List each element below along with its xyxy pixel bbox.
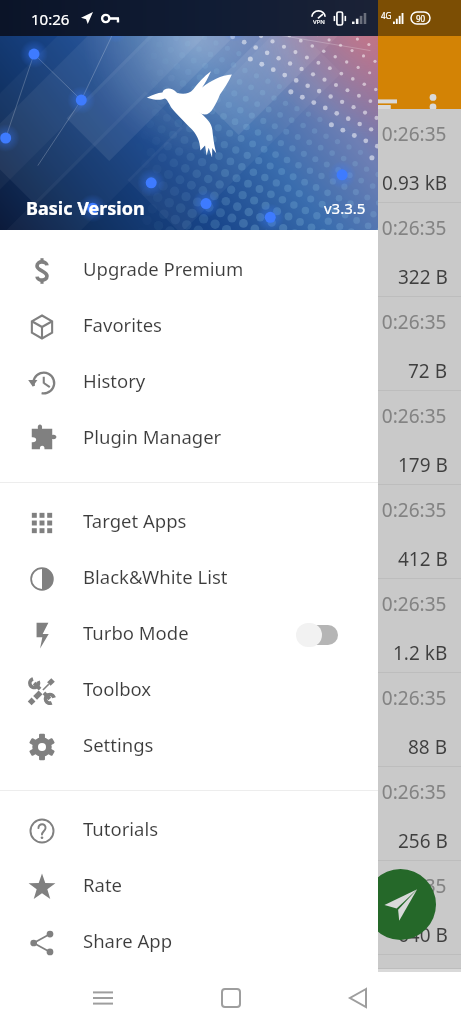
button[interactable]: Upgrade Premium [0,243,378,299]
button[interactable]: Black&White List [0,551,378,607]
staticText: 10:26 [31,9,70,29]
staticText: 90 [416,13,426,24]
button[interactable]: Tutorials [0,803,378,859]
button[interactable]: 10:26:35 [0,673,461,767]
button[interactable]: Favorites [0,299,378,355]
button[interactable]: 10:26:35 [0,579,461,673]
staticText: Plugin Manager [83,424,222,449]
button[interactable]: Back [334,974,382,1022]
button[interactable]: Plugin Manager [0,411,378,467]
staticText: 10:26:35 [371,215,447,241]
staticText: 10:26:35 [371,497,447,523]
button[interactable]: Send [365,869,436,940]
staticText: 179 B [398,452,448,478]
staticText: 4G [381,10,392,21]
staticText: 256 B [398,828,448,854]
button[interactable]: 10:26:35 [0,767,461,861]
staticText: 10:26:35 [371,873,447,899]
staticText: Settings [83,732,154,757]
staticText: 640 B [398,922,448,948]
staticText: 10:26:35 [371,591,447,617]
staticText: Favorites [83,312,162,337]
staticText: 10:26:35 [371,967,447,981]
staticText: 10:26:35 [371,403,447,429]
button[interactable]: Filter list [360,83,408,131]
staticText: v3.3.5 [324,198,366,218]
button[interactable]: Share App [0,915,378,971]
staticText: 88 B [408,734,448,760]
staticText: Tutorials [83,816,159,841]
button[interactable]: 10:26:35 [0,203,461,297]
staticText: 10:26:35 [371,779,447,805]
staticText: 412 B [398,546,448,572]
button[interactable]: Target Apps [0,495,378,551]
staticText: 72 B [408,358,448,384]
button[interactable]: Toolbox [0,663,378,719]
button[interactable]: Rate [0,859,378,915]
button[interactable]: 10:26:35 [0,391,461,485]
button[interactable]: Home [207,974,255,1022]
button[interactable]: Turbo Mode [0,607,378,663]
button[interactable]: History [0,355,378,411]
staticText: 10:26:35 [371,309,447,335]
button[interactable]: Recents [79,974,127,1022]
staticText: 0.93 kB [382,170,448,196]
staticText: Target Apps [83,508,187,533]
staticText: VPN [313,18,325,26]
staticText: 322 B [398,264,448,290]
button[interactable]: 10:26:35 [0,485,461,579]
staticText: Toolbox [83,676,152,701]
staticText: Turbo Mode [83,620,189,645]
staticText: 10:26:35 [371,121,447,147]
button[interactable]: More options [409,83,457,131]
staticText: Basic Version [26,196,145,221]
button[interactable]: 10:26:35 [0,109,461,203]
staticText: Share App [83,928,173,953]
staticText: Rate [83,872,122,897]
staticText: 1.2 kB [393,640,448,666]
button[interactable]: 10:26:35 [0,861,461,955]
staticText: History [83,368,146,393]
staticText: Black&White List [83,564,228,589]
button[interactable]: 10:26:35 [0,955,461,969]
staticText: Upgrade Premium [83,256,244,281]
staticText: 10:26:35 [371,685,447,711]
button[interactable]: Settings [0,719,378,775]
button[interactable]: 10:26:35 [0,297,461,391]
